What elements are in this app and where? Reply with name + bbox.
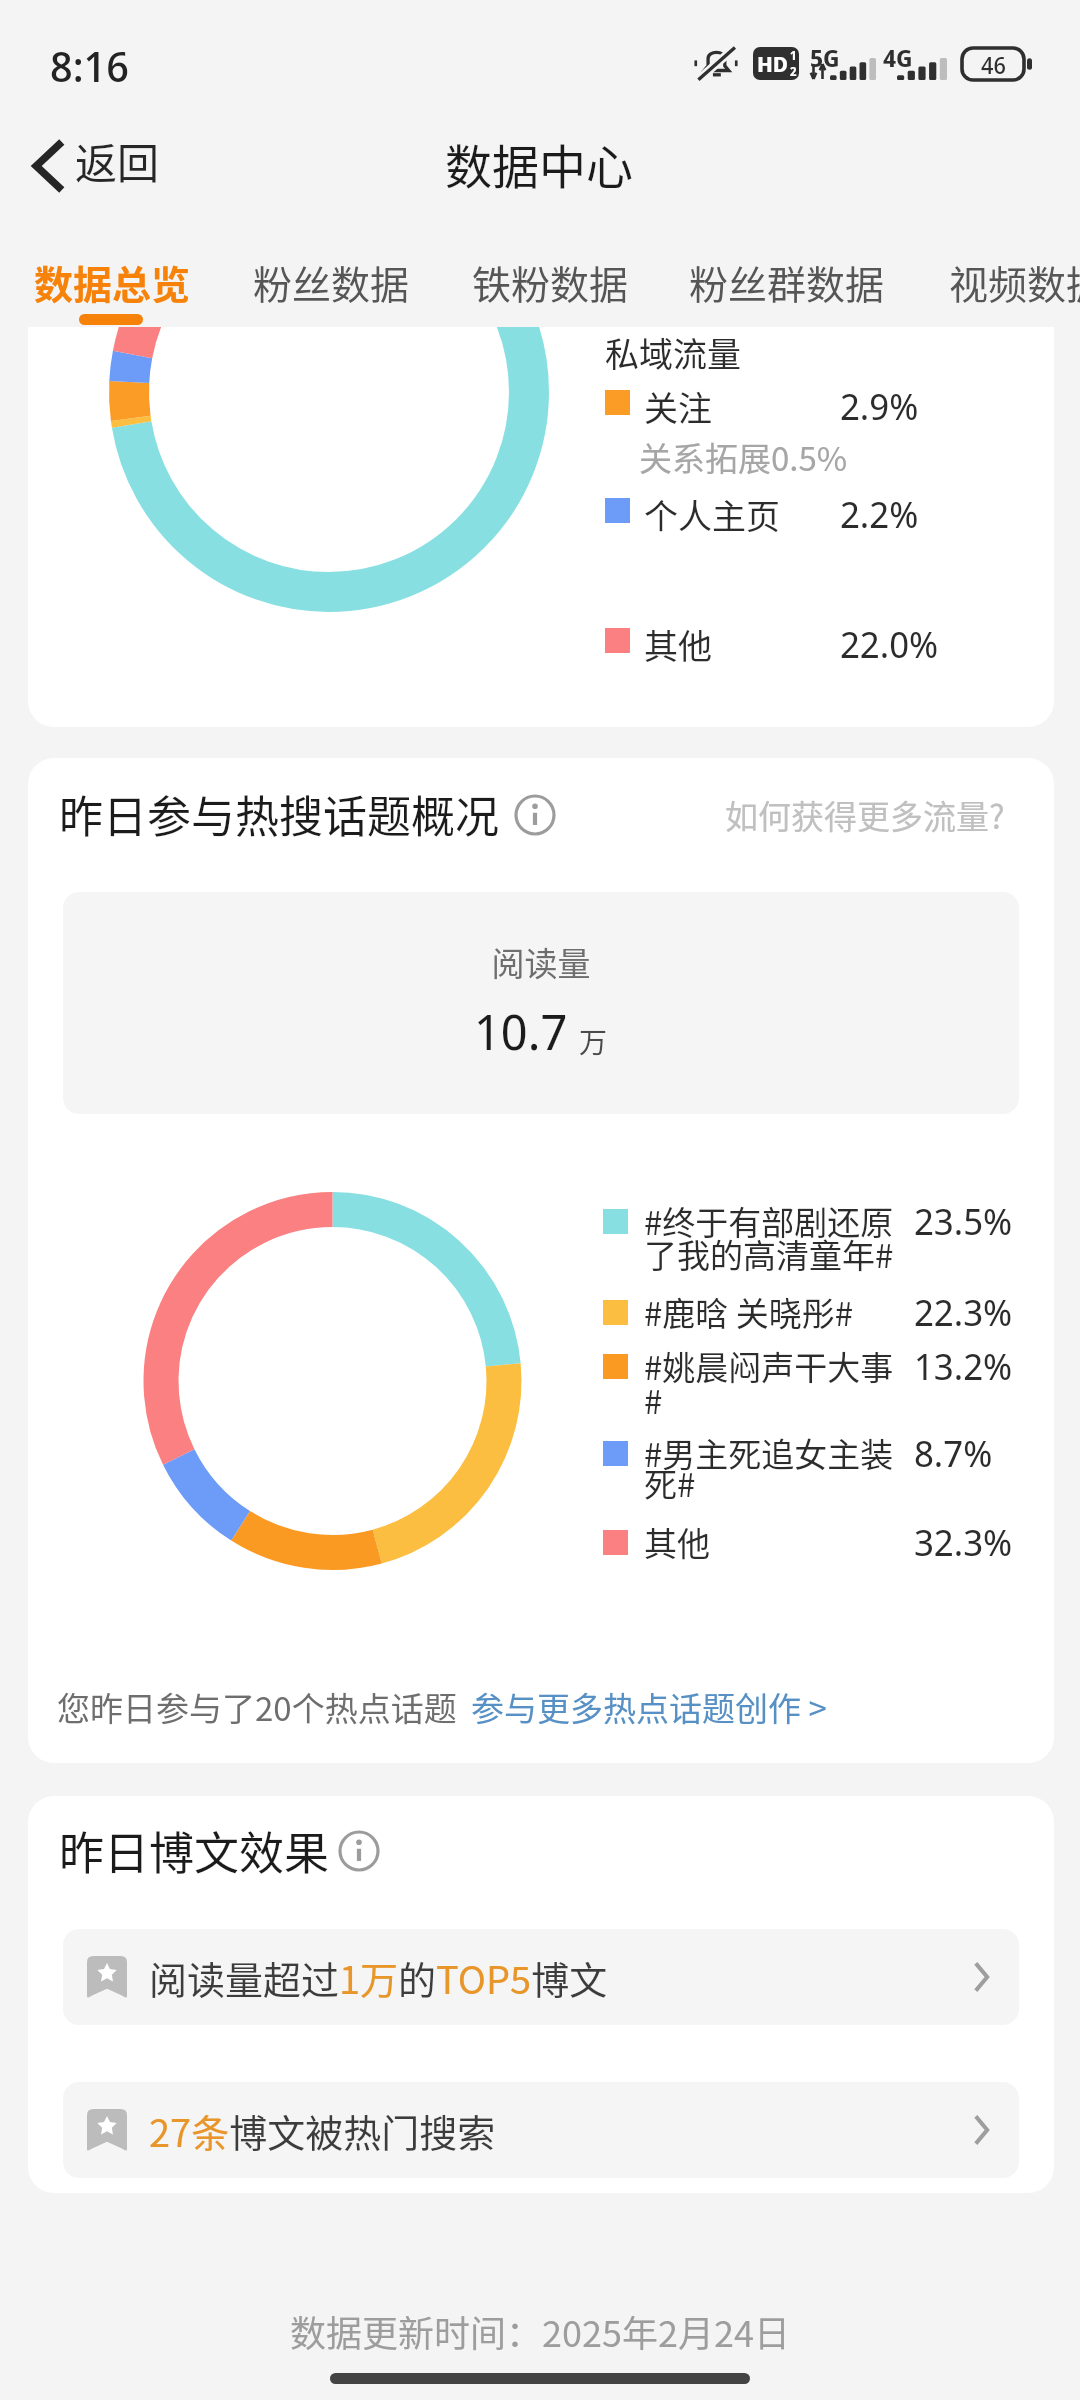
button[interactable]: 视频数据 [931, 220, 1080, 327]
staticText: #鹿晗 关晓彤# [644, 1288, 854, 1336]
staticText: 铁粉数据 [472, 254, 629, 310]
staticText: 8.7% [914, 1427, 993, 1477]
staticText: 13.2% [914, 1340, 1013, 1390]
staticText: 昨日博文效果 [59, 1818, 330, 1883]
staticText: #男主死追女主装 [644, 1429, 894, 1477]
staticText: #姚晨闷声干大事 [644, 1342, 894, 1390]
staticText: 关注 [644, 382, 712, 431]
staticText: 1 [790, 47, 797, 63]
staticText: 粉丝数据 [253, 254, 410, 310]
button[interactable]: 粉丝数据 [235, 220, 428, 327]
staticText: 参与更多热点话题创作 > [471, 1683, 827, 1731]
staticText: 关系拓展0.5% [639, 433, 848, 481]
other: Back [33, 140, 65, 192]
staticText: 46 [981, 49, 1006, 80]
staticText: 2.9% [840, 380, 919, 430]
staticText: 私域流量 [605, 328, 741, 377]
staticText: 2 [790, 63, 797, 79]
staticText: 5G [810, 41, 840, 74]
staticText: 其他 [644, 1518, 710, 1566]
button[interactable]: 粉丝群数据 [671, 220, 903, 327]
staticText: 阅读量 [63, 938, 1019, 986]
staticText: 数据更新时间：2025年2月24日 [0, 2305, 1080, 2357]
staticText: 视频数据 [949, 254, 1080, 310]
staticText: 如何获得更多流量? [725, 791, 1005, 839]
staticText: 万 [579, 1021, 608, 1062]
staticText: HD [757, 48, 789, 78]
button[interactable]: About hot-search topics [514, 794, 556, 836]
staticText: # [644, 1376, 663, 1424]
staticText: 死# [644, 1459, 696, 1507]
staticText: 27条博文被热门搜索 [149, 2103, 496, 2158]
staticText: 22.3% [914, 1286, 1013, 1336]
button[interactable]: 如何获得更多流量? [725, 791, 1005, 839]
staticText: 个人主页 [644, 490, 780, 539]
staticText: 昨日参与热搜话题概况 [59, 782, 499, 846]
button[interactable]: 27条博文被热门搜索 [63, 2082, 1019, 2178]
staticText: 22.0% [840, 618, 939, 668]
staticText: 其他 [644, 620, 712, 669]
button[interactable]: 阅读量超过1万的TOP5博文 [63, 1929, 1019, 2025]
staticText: 2.2% [840, 488, 919, 538]
staticText: 数据总览 [34, 254, 191, 310]
staticText: 了我的高清童年# [644, 1230, 894, 1278]
button[interactable]: 数据总览 [16, 220, 209, 327]
staticText: 您昨日参与了20个热点话题 [57, 1683, 457, 1731]
staticText: 23.5% [914, 1195, 1013, 1245]
other: Silent mode [694, 46, 738, 82]
staticText: 10.7 [474, 997, 568, 1065]
staticText: 数据中心 [445, 129, 633, 197]
button[interactable]: About post performance [338, 1830, 380, 1872]
button[interactable]: Back [0, 121, 182, 210]
button[interactable]: 参与更多热点话题创作 > [471, 1683, 827, 1731]
staticText: 32.3% [914, 1516, 1013, 1566]
staticText: 粉丝群数据 [689, 254, 885, 310]
button[interactable]: 铁粉数据 [454, 220, 647, 327]
staticText: 返回 [75, 130, 160, 191]
staticText: 8:16 [50, 37, 129, 94]
staticText: #终于有部剧还原 [644, 1197, 894, 1245]
staticText: 阅读量超过1万的TOP5博文 [149, 1950, 608, 2005]
staticText: 4G [883, 41, 913, 74]
